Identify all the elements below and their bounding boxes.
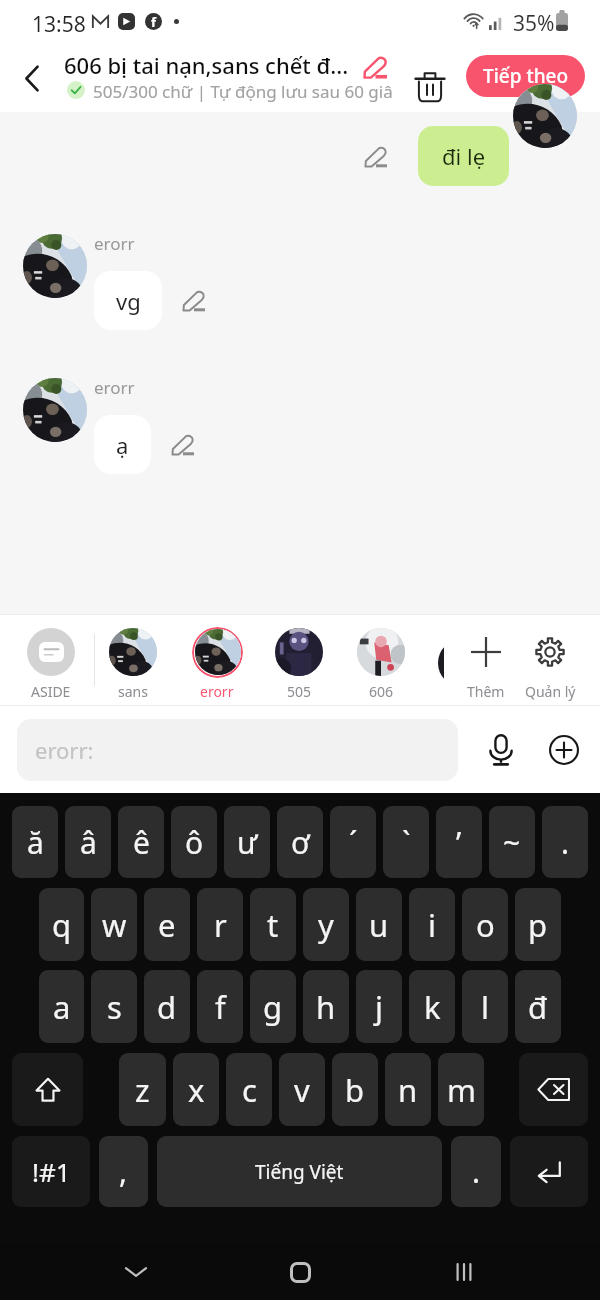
staticText: p: [528, 904, 548, 946]
staticText: x: [188, 1069, 205, 1111]
button[interactable]: Backspace: [519, 1053, 588, 1126]
button[interactable]: j: [356, 970, 402, 1043]
staticText: z: [135, 1069, 150, 1111]
button[interactable]: ´: [330, 806, 376, 878]
button[interactable]: erorr:: [17, 719, 458, 781]
button[interactable]: v: [279, 1053, 325, 1126]
button[interactable]: z: [119, 1053, 166, 1126]
button[interactable]: ă: [12, 806, 58, 878]
staticText: ,: [119, 1151, 128, 1192]
button[interactable]: Quản lý: [509, 626, 591, 702]
staticText: f: [151, 13, 157, 30]
button[interactable]: l: [462, 970, 508, 1043]
button[interactable]: Add: [544, 730, 584, 770]
button[interactable]: q: [39, 888, 84, 961]
staticText: ơ: [291, 822, 310, 863]
button[interactable]: Delete: [406, 62, 454, 110]
button[interactable]: t: [250, 888, 296, 961]
staticText: ê: [133, 822, 150, 863]
staticText: ~: [503, 822, 521, 863]
staticText: Thêm: [467, 682, 505, 701]
button[interactable]: p: [515, 888, 561, 961]
button[interactable]: vg: [94, 271, 162, 330]
button[interactable]: Voice input: [481, 730, 521, 770]
button[interactable]: w: [91, 888, 137, 961]
staticText: a: [53, 986, 71, 1028]
button[interactable]: Shift: [12, 1053, 83, 1126]
button[interactable]: Tiếp theo: [466, 55, 585, 97]
button[interactable]: u: [356, 888, 402, 961]
button[interactable]: ’: [436, 806, 482, 878]
staticText: sans: [118, 682, 148, 701]
staticText: y: [318, 904, 334, 946]
staticText: đ: [528, 986, 548, 1028]
staticText: ASIDE: [31, 682, 71, 701]
staticText: u: [369, 904, 389, 946]
staticText: q: [52, 904, 72, 946]
staticText: ô: [185, 822, 204, 863]
staticText: r: [214, 904, 227, 946]
button[interactable]: 505: [258, 626, 340, 702]
button[interactable]: ơ: [277, 806, 323, 878]
button[interactable]: i: [409, 888, 455, 961]
button[interactable]: Tiếng Việt: [157, 1136, 442, 1207]
button[interactable]: c: [226, 1053, 272, 1126]
button[interactable]: k: [409, 970, 455, 1043]
staticText: i: [428, 904, 436, 946]
button[interactable]: Edit message: [363, 144, 389, 170]
button[interactable]: sans: [92, 626, 174, 702]
button[interactable]: s: [91, 970, 137, 1043]
button[interactable]: a: [39, 970, 84, 1043]
button[interactable]: Edit message: [181, 288, 207, 314]
button[interactable]: ư: [224, 806, 270, 878]
button[interactable]: Edit message: [170, 432, 196, 458]
button[interactable]: ạ: [94, 415, 151, 474]
staticText: n: [398, 1069, 418, 1111]
button[interactable]: r: [197, 888, 243, 961]
staticText: t: [267, 904, 279, 946]
button[interactable]: x: [173, 1053, 219, 1126]
staticText: ´: [349, 822, 358, 863]
button[interactable]: .: [451, 1136, 501, 1207]
button[interactable]: Edit title: [362, 54, 388, 80]
button[interactable]: â: [65, 806, 111, 878]
button[interactable]: đ: [515, 970, 561, 1043]
button[interactable]: n: [385, 1053, 431, 1126]
staticText: â: [80, 822, 97, 863]
button[interactable]: ô: [171, 806, 217, 878]
button[interactable]: Home: [272, 1244, 328, 1300]
staticText: s: [107, 986, 122, 1028]
button[interactable]: Thêm: [445, 626, 527, 702]
button[interactable]: d: [144, 970, 190, 1043]
button[interactable]: h: [303, 970, 349, 1043]
staticText: erorr:: [35, 735, 94, 765]
button[interactable]: Enter: [510, 1136, 588, 1207]
staticText: 505/300 chữ | Tự động lưu sau 60 giây: [93, 80, 393, 103]
staticText: Quản lý: [525, 682, 576, 701]
button[interactable]: erorr: [176, 626, 258, 702]
button[interactable]: ê: [118, 806, 164, 878]
button[interactable]: 606: [340, 626, 422, 702]
button[interactable]: đi lẹ: [418, 126, 509, 186]
button[interactable]: Recents: [436, 1244, 492, 1300]
button[interactable]: y: [303, 888, 349, 961]
button[interactable]: e: [144, 888, 190, 961]
button[interactable]: b: [332, 1053, 378, 1126]
button[interactable]: m: [438, 1053, 484, 1126]
button[interactable]: o: [462, 888, 508, 961]
staticText: ă: [27, 822, 44, 863]
button[interactable]: ~: [489, 806, 535, 878]
button[interactable]: Hide keyboard: [108, 1244, 164, 1300]
staticText: 606: [369, 682, 394, 701]
staticText: erorr: [94, 232, 135, 255]
button[interactable]: Back: [8, 51, 56, 105]
button[interactable]: `: [383, 806, 429, 878]
staticText: o: [476, 904, 495, 946]
staticText: ạ: [116, 430, 129, 460]
button[interactable]: g: [250, 970, 296, 1043]
button[interactable]: !#1: [12, 1136, 90, 1207]
button[interactable]: f: [197, 970, 243, 1043]
button[interactable]: ,: [99, 1136, 148, 1207]
button[interactable]: ASIDE: [10, 626, 92, 702]
button[interactable]: .: [542, 806, 588, 878]
